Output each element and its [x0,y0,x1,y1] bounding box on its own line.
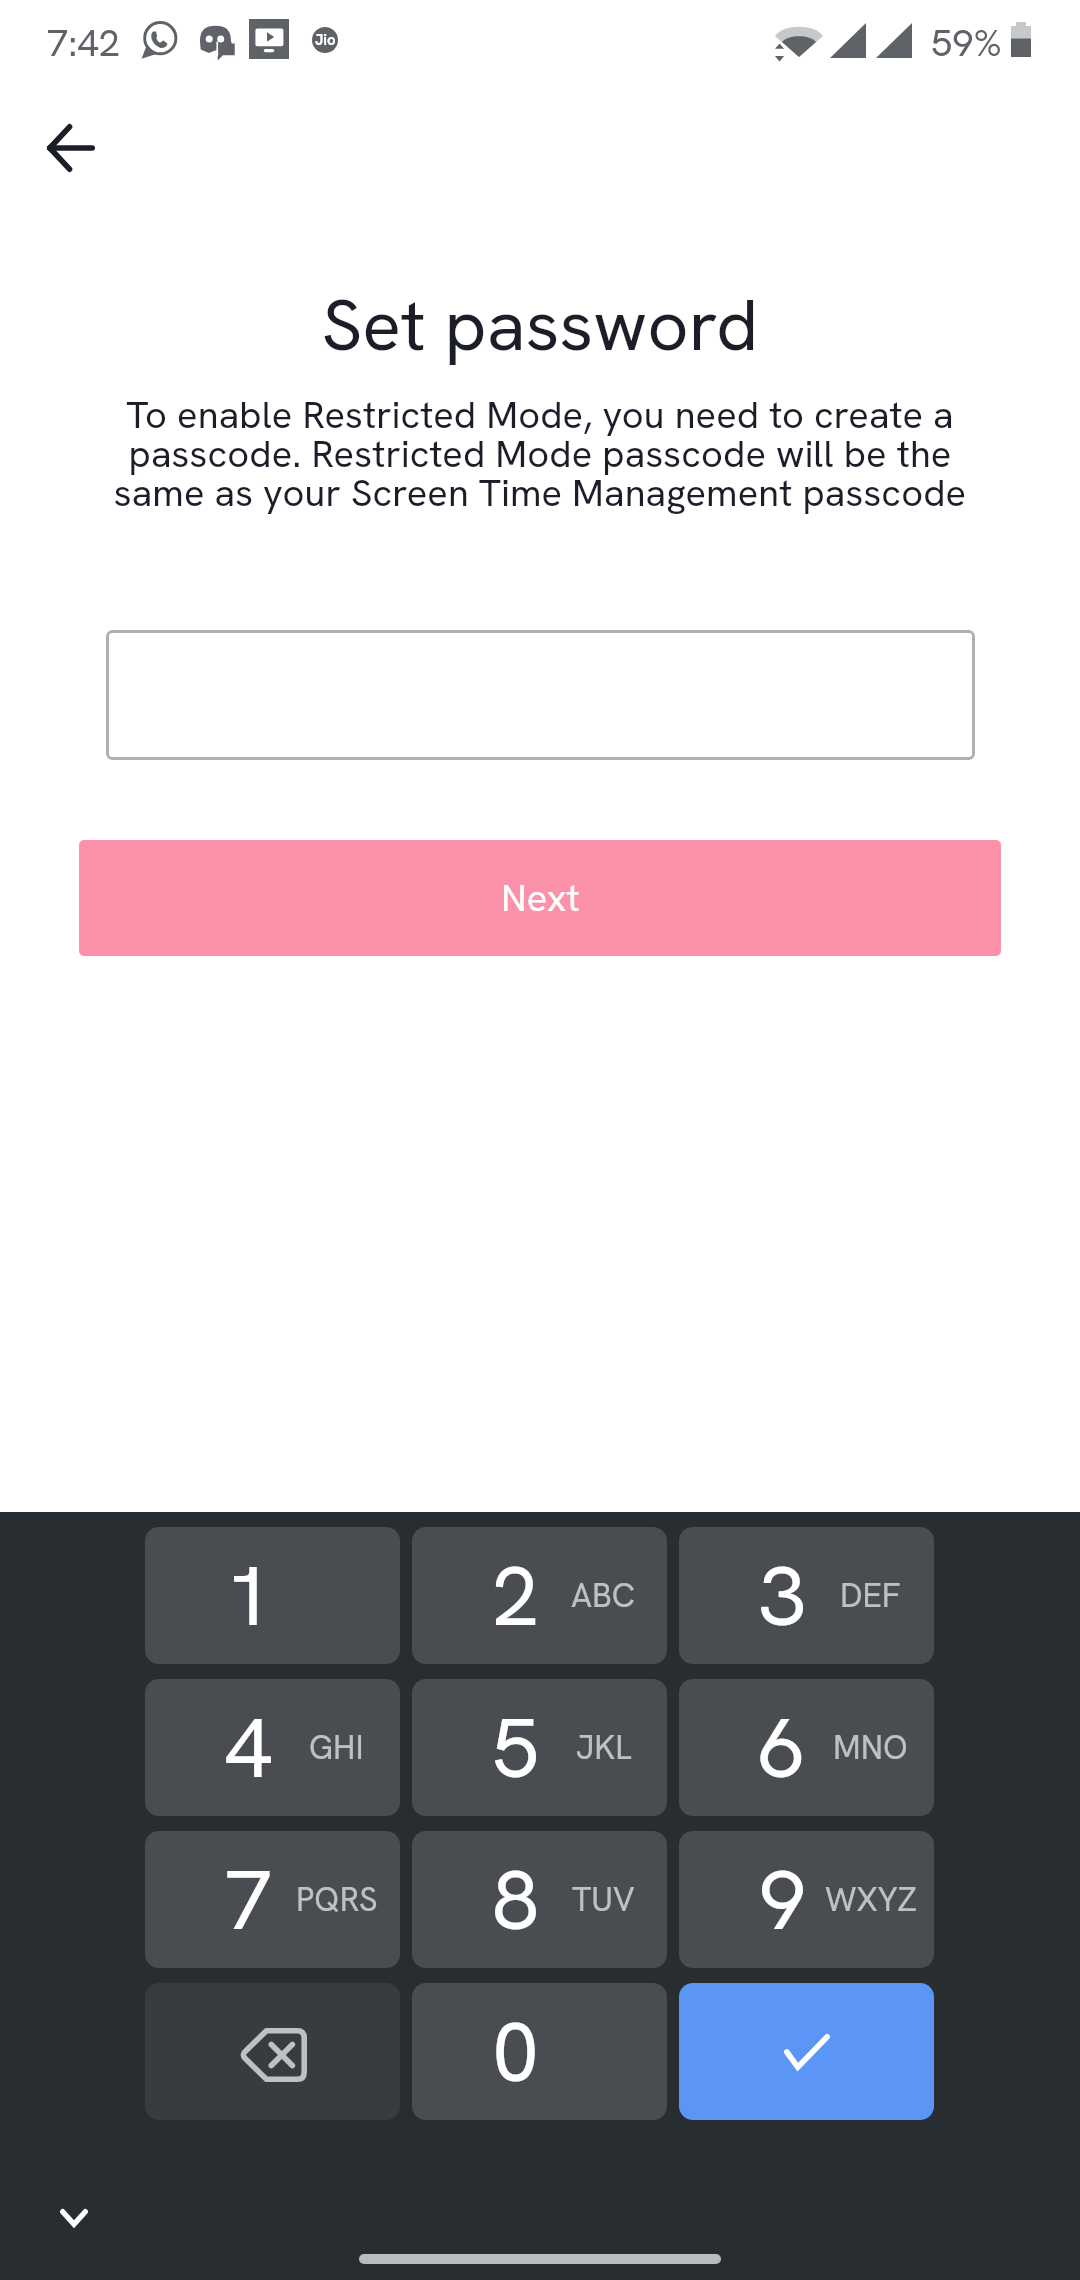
staticText: Set password [0,278,1080,372]
button[interactable]: 6 [679,1679,934,1816]
button[interactable]: Backspace [145,1983,400,2120]
staticText: PQRS [296,1878,378,1921]
staticText: GHI [309,1726,364,1769]
button[interactable]: 8 [412,1831,667,1968]
button[interactable]: Hide keyboard [34,2178,114,2258]
staticText: 59% [931,18,1002,68]
staticText: 3 [759,1541,807,1650]
staticText: 1 [225,1541,273,1650]
button[interactable]: 7 [145,1831,400,1968]
staticText: TUV [572,1878,635,1921]
staticText: 5 [492,1693,540,1802]
staticText: 4 [225,1693,273,1802]
staticText: 9 [759,1845,807,1954]
staticText: ABC [571,1574,636,1617]
staticText: DEF [840,1574,901,1617]
button[interactable]: Enter [679,1983,934,2120]
button[interactable]: Password field [106,630,975,760]
button[interactable]: 1 [145,1527,400,1664]
staticText: Jio [315,30,336,50]
button[interactable]: 9 [679,1831,934,1968]
button[interactable]: 5 [412,1679,667,1816]
button[interactable]: 4 [145,1679,400,1816]
button[interactable]: Back [23,100,119,196]
button[interactable]: 0 [412,1983,667,2120]
button[interactable]: 2 [412,1527,667,1664]
staticText: 8 [492,1845,540,1954]
button[interactable]: 3 [679,1527,934,1664]
staticText: WXYZ [825,1878,917,1921]
staticText: 0 [492,1997,540,2106]
button[interactable]: Next [79,840,1001,956]
staticText: To enable Restricted Mode, you need to c… [56,390,1024,517]
staticText: 6 [759,1693,807,1802]
staticText: MNO [833,1726,908,1769]
staticText: 7 [225,1845,273,1954]
staticText: Next [501,873,580,923]
staticText: JKL [576,1726,632,1769]
staticText: 2 [492,1541,540,1650]
staticText: 7:42 [47,18,120,68]
